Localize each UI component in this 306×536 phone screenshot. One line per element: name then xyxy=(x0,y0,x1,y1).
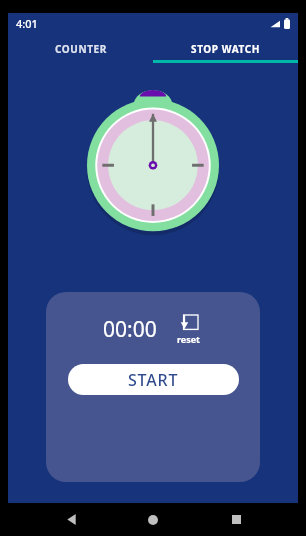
staticText: COUNTER xyxy=(55,42,107,56)
button[interactable]: Recent apps xyxy=(216,503,256,536)
button[interactable]: Back xyxy=(51,503,91,536)
staticText: 00:00 xyxy=(103,315,157,344)
staticText: STOP WATCH xyxy=(191,42,260,56)
staticText: 4:01 xyxy=(16,16,38,31)
button[interactable]: Home xyxy=(133,503,173,536)
button[interactable]: START xyxy=(68,364,239,395)
button[interactable]: COUNTER xyxy=(8,34,153,63)
staticText: START xyxy=(128,369,179,391)
staticText: reset xyxy=(177,333,201,345)
button[interactable]: Reset xyxy=(175,312,203,347)
button[interactable]: STOP WATCH xyxy=(153,34,298,63)
